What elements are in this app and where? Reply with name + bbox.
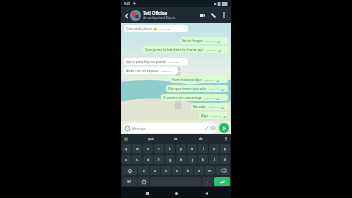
staticText: últ. vez hoy a las 4:05 p. m.	[143, 16, 176, 20]
button[interactable]: q	[122, 144, 131, 153]
staticText: 4:05 p. m.	[160, 28, 171, 31]
button[interactable]: k	[198, 155, 208, 164]
staticText: j	[192, 157, 193, 162]
staticText: 4:06 p. m.	[204, 79, 215, 82]
button[interactable]: No te frieges	[180, 37, 228, 44]
button[interactable]: Jaja sí para hoy no puedo	[124, 58, 188, 65]
button[interactable]: Algo	[199, 112, 228, 119]
staticText: 4:05 p. m.	[168, 61, 179, 64]
button[interactable]: ñ	[220, 155, 230, 164]
staticText: q	[125, 146, 128, 151]
button[interactable]: Teti Oficina	[143, 10, 198, 20]
button[interactable]: x	[150, 166, 160, 175]
staticText: p	[224, 146, 227, 151]
staticText: 9:41	[124, 2, 131, 6]
button[interactable]: Mensaje	[123, 123, 217, 133]
staticText: Jaja sí para hoy no puedo	[126, 59, 166, 64]
button[interactable]: v	[172, 166, 182, 175]
staticText: w	[136, 146, 139, 151]
button[interactable]: a	[122, 155, 131, 164]
button[interactable]: Voice input	[224, 137, 228, 141]
staticText: No te frieges	[182, 38, 203, 43]
staticText: Algo	[201, 113, 209, 118]
staticText: que	[148, 137, 154, 141]
button[interactable]: Pues mañana algo	[170, 76, 228, 83]
button[interactable]: p	[220, 144, 230, 153]
staticText: ñ	[224, 157, 227, 162]
staticText: s	[136, 157, 138, 162]
button[interactable]: Emoji	[124, 137, 128, 141]
staticText: h	[180, 157, 183, 162]
button[interactable]: l	[209, 155, 219, 164]
staticText: Teti Oficina	[143, 10, 168, 16]
staticText: 4:06 p. m.	[204, 97, 215, 100]
button[interactable]: Shift	[122, 166, 137, 175]
button[interactable]: No sabe	[191, 103, 228, 110]
button[interactable]: z	[138, 166, 149, 175]
button[interactable]: More options	[220, 11, 228, 19]
staticText: u	[191, 146, 194, 151]
button[interactable]: w	[132, 144, 142, 153]
staticText: l	[214, 157, 215, 162]
button[interactable]: h	[176, 155, 186, 164]
staticText: Que ya me lo has dado la chante jeje	[145, 47, 204, 52]
button[interactable]: Symbols	[122, 177, 137, 186]
button[interactable]: Dile que tienes que salir	[166, 85, 228, 92]
staticText: de	[199, 137, 203, 141]
staticText: y	[180, 146, 182, 151]
button[interactable]: Period	[202, 177, 213, 186]
button[interactable]: c	[161, 166, 171, 175]
button[interactable]: b	[183, 166, 193, 175]
staticText: !#1	[127, 180, 132, 184]
staticText: Dile que tienes que salir	[168, 86, 207, 91]
staticText: x	[154, 168, 156, 173]
button[interactable]: g	[165, 155, 175, 164]
staticText: v	[176, 168, 178, 173]
staticText: g	[169, 157, 172, 162]
button[interactable]: e	[143, 144, 153, 153]
button[interactable]: Back	[202, 189, 210, 197]
button[interactable]: i	[198, 144, 208, 153]
staticText: es	[174, 137, 178, 141]
staticText: No sabe	[193, 104, 207, 109]
button[interactable]: m	[205, 166, 215, 175]
button[interactable]: d	[143, 155, 153, 164]
button[interactable]: O vamos con una amiga	[161, 94, 228, 101]
staticText: a	[125, 157, 128, 162]
button[interactable]: Que ya me lo has dado la chante jeje	[143, 46, 228, 53]
staticText: m	[208, 168, 212, 173]
button[interactable]: Call	[209, 11, 217, 19]
staticText: r	[158, 146, 160, 151]
button[interactable]: Back	[123, 12, 130, 19]
button[interactable]: Recents	[143, 189, 151, 197]
staticText: n	[198, 168, 201, 173]
staticText: .	[207, 180, 208, 184]
button[interactable]: n	[194, 166, 204, 175]
button[interactable]: Ando con mi esposa	[124, 67, 178, 74]
button[interactable]: u	[187, 144, 197, 153]
button[interactable]: Send	[219, 123, 229, 133]
staticText: z	[143, 168, 145, 173]
staticText: 4:06 p. m.	[209, 106, 220, 109]
staticText: k	[202, 157, 204, 162]
button[interactable]: Qué pedo jefeee 👊	[124, 25, 188, 32]
button[interactable]: Home	[172, 189, 180, 197]
button[interactable]: s	[132, 155, 142, 164]
button[interactable]: f	[154, 155, 164, 164]
staticText: Ando con mi esposa	[126, 68, 159, 73]
button[interactable]: Backspace	[216, 166, 230, 175]
staticText: Mensaje	[132, 126, 146, 131]
button[interactable]: Video call	[198, 11, 206, 19]
button[interactable]: t	[165, 144, 175, 153]
staticText: o	[213, 146, 216, 151]
staticText: Qué pedo jefeee 👊	[126, 26, 158, 31]
button[interactable]: y	[176, 144, 186, 153]
button[interactable]: o	[209, 144, 219, 153]
button[interactable]: j	[187, 155, 197, 164]
button[interactable]: r	[154, 144, 164, 153]
staticText: 4:06 p. m.	[209, 88, 220, 91]
button[interactable]: Emoji keyboard	[138, 177, 149, 186]
button[interactable]: Enter	[214, 177, 230, 186]
staticText: 4:05 p. m.	[206, 49, 217, 52]
